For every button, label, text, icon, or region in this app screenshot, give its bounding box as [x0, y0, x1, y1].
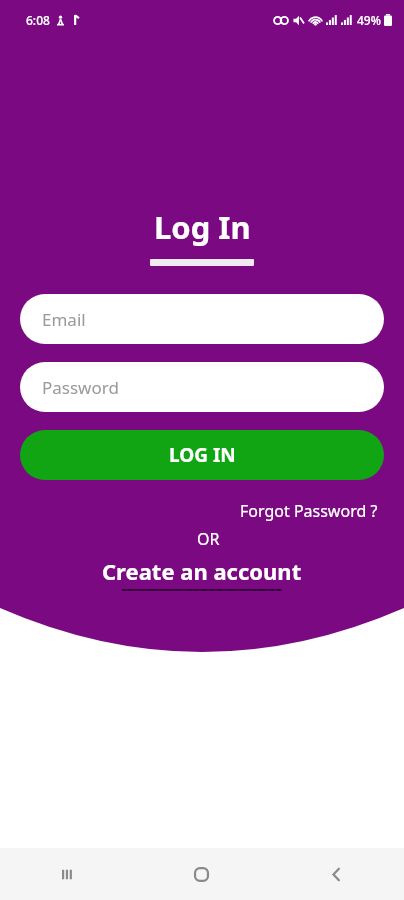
staticText: LOG IN: [169, 442, 236, 468]
staticText: Log In: [154, 206, 251, 248]
button[interactable]: LOG IN: [20, 430, 384, 480]
button[interactable]: Password: [20, 362, 384, 412]
staticText: 6:08: [26, 12, 50, 28]
button[interactable]: Email: [20, 294, 384, 344]
button[interactable]: Create an account: [102, 556, 302, 591]
button[interactable]: Home: [134, 848, 269, 900]
button[interactable]: Recent apps: [0, 848, 134, 900]
staticText: Forgot Password ?: [240, 500, 378, 522]
staticText: 49%: [357, 12, 381, 28]
staticText: OR: [197, 528, 220, 550]
button[interactable]: Forgot Password ?: [236, 496, 382, 526]
staticText: Password: [42, 376, 119, 399]
button[interactable]: Back: [269, 848, 404, 900]
staticText: Create an account: [102, 556, 302, 586]
staticText: Email: [42, 308, 86, 331]
